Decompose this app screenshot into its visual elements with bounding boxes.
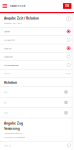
staticText: 14.08 [65, 72, 70, 75]
button[interactable]: Woche [0, 69, 74, 77]
staticText: Angabe Zug [4, 121, 23, 125]
staticText: i [68, 144, 69, 147]
staticText: Trassenart Tfz Zuglaenge [4, 136, 25, 138]
staticText: Angabe Zeit / Relation [4, 16, 39, 20]
button[interactable]: ETCS L2 [0, 141, 74, 149]
button[interactable]: Info [66, 16, 71, 22]
staticText: Ankunft [4, 38, 15, 41]
staticText: Morgen [4, 55, 13, 58]
staticText: Von [4, 91, 7, 93]
staticText: Via [4, 101, 6, 104]
staticText: Übermorgen [4, 63, 19, 67]
button[interactable]: Von [0, 87, 74, 97]
staticText: Trassenfinder [10, 4, 26, 8]
button[interactable]: Heute [0, 44, 74, 52]
button[interactable]: Deutsche Bahn [63, 3, 71, 9]
button[interactable]: Ankunft [0, 36, 74, 44]
staticText: Zeitpunkt der Fahrt [4, 22, 22, 25]
staticText: Angaben gemäß DIN 15... [4, 132, 25, 134]
staticText: Trassierung [4, 127, 20, 130]
button[interactable]: Via [0, 97, 74, 107]
button[interactable]: Morgen [0, 53, 74, 61]
staticText: ETCS L2 [4, 144, 11, 147]
staticText: Heute [4, 46, 11, 50]
staticText: Nach [4, 111, 8, 114]
button[interactable]: Nach [0, 108, 74, 118]
staticText: Woche [4, 72, 10, 75]
staticText: DB [65, 4, 69, 8]
staticText: i [68, 17, 69, 21]
staticText: Sofort [4, 30, 10, 33]
button[interactable]: Sofort [0, 27, 74, 35]
button[interactable]: Menu [0, 0, 10, 12]
staticText: Relation [4, 80, 17, 85]
button[interactable]: Übermorgen [0, 61, 74, 69]
